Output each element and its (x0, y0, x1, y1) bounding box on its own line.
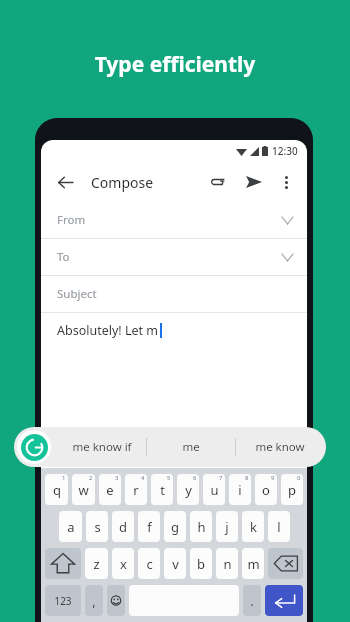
button[interactable]: c (138, 548, 160, 579)
button[interactable]: a (59, 511, 82, 542)
staticText: z (93, 555, 100, 573)
button[interactable]: h (190, 511, 212, 542)
button[interactable]: To (41, 239, 307, 275)
staticText: m (247, 555, 260, 573)
staticText: q (53, 481, 61, 499)
staticText: d (119, 518, 127, 536)
staticText: 7 (219, 474, 223, 482)
button[interactable]: me know if (57, 427, 146, 467)
button[interactable]: k (242, 511, 264, 542)
button[interactable]: e (99, 474, 121, 505)
staticText: a (67, 518, 75, 536)
button[interactable]: q (45, 474, 68, 505)
button[interactable]: j (216, 511, 238, 542)
button[interactable]: r (125, 474, 147, 505)
staticText: j (225, 518, 229, 536)
button[interactable]: s (86, 511, 108, 542)
staticText: me know (255, 439, 305, 455)
button[interactable]: v (164, 548, 186, 579)
button[interactable]: More options (275, 171, 297, 193)
staticText: k (250, 518, 257, 536)
button[interactable]: 123 (45, 585, 81, 616)
button[interactable]: me know (236, 427, 324, 467)
staticText: Compose (91, 173, 154, 192)
button[interactable]: m (242, 548, 264, 579)
staticText: 8 (245, 474, 249, 482)
button[interactable]: w (72, 474, 95, 505)
button[interactable]: x (112, 548, 134, 579)
staticText: s (94, 518, 101, 536)
staticText: g (171, 518, 179, 536)
staticText: Type efficiently (0, 50, 350, 79)
button[interactable]: g (164, 511, 186, 542)
staticText: 2 (89, 474, 93, 482)
staticText: e (106, 481, 114, 499)
button[interactable]: f (138, 511, 160, 542)
staticText: v (172, 555, 179, 573)
button[interactable]: d (112, 511, 134, 542)
button[interactable]: b (190, 548, 212, 579)
staticText: i (238, 481, 242, 499)
button[interactable]: u (203, 474, 225, 505)
button[interactable]: Enter (265, 585, 303, 616)
staticText: 12:30 (272, 144, 298, 158)
button[interactable]: t (151, 474, 173, 505)
staticText: r (133, 481, 139, 499)
staticText: 6 (193, 474, 197, 482)
button[interactable]: i (229, 474, 251, 505)
staticText: 0 (297, 474, 301, 482)
button[interactable]: Send (241, 169, 267, 195)
button[interactable]: Back (52, 169, 78, 195)
staticText: w (78, 481, 89, 499)
staticText: 123 (54, 594, 72, 608)
button[interactable]: n (216, 548, 238, 579)
button[interactable]: . (243, 585, 261, 616)
button[interactable]: , (85, 585, 103, 616)
staticText: 3 (115, 474, 119, 482)
staticText: . (250, 592, 254, 610)
staticText: h (197, 518, 206, 536)
staticText: x (120, 555, 127, 573)
button[interactable]: Grammarly (17, 430, 51, 464)
staticText: c (146, 555, 153, 573)
staticText: p (288, 481, 296, 499)
staticText: n (223, 555, 232, 573)
button[interactable]: p (281, 474, 303, 505)
button[interactable]: me (147, 427, 235, 467)
staticText: 4 (141, 474, 145, 482)
button[interactable]: z (85, 548, 108, 579)
staticText: me know if (72, 439, 132, 455)
staticText: , (92, 592, 96, 610)
button[interactable]: Subject (41, 276, 307, 312)
staticText: Absolutely! Let m (57, 322, 159, 339)
staticText: u (210, 481, 219, 499)
staticText: f (147, 518, 152, 536)
staticText: me (182, 439, 200, 455)
staticText: 5 (167, 474, 171, 482)
button[interactable]: Attach file (205, 169, 231, 195)
staticText: b (197, 555, 205, 573)
button[interactable]: Shift (45, 548, 81, 579)
button[interactable]: l (268, 511, 290, 542)
button[interactable]: Emoji (107, 585, 125, 616)
button[interactable]: y (177, 474, 199, 505)
button[interactable]: o (255, 474, 277, 505)
staticText: t (160, 481, 165, 499)
staticText: l (277, 518, 281, 536)
staticText: y (185, 481, 192, 499)
staticText: Subject (57, 286, 97, 302)
staticText: 1 (62, 474, 66, 482)
button[interactable]: Backspace (268, 548, 303, 579)
staticText: From (57, 212, 86, 228)
staticText: 9 (271, 474, 275, 482)
staticText: o (262, 481, 270, 499)
staticText: To (57, 249, 70, 265)
button[interactable]: From (41, 202, 307, 238)
